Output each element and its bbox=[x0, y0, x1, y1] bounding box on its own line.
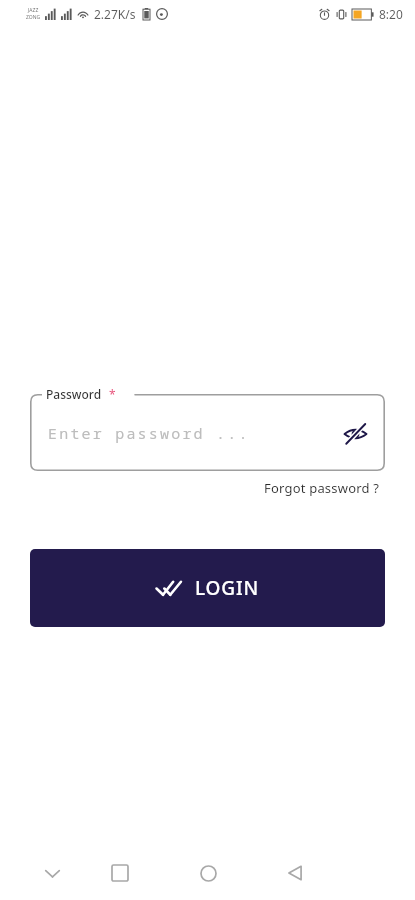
staticText: Forgot password ? bbox=[264, 479, 380, 497]
staticText: LOGIN bbox=[195, 575, 259, 601]
button[interactable]: Show password bbox=[333, 411, 377, 455]
button[interactable]: Forgot password ? bbox=[256, 476, 388, 500]
button[interactable]: Recent apps bbox=[98, 851, 142, 895]
staticText: 2.27K/s bbox=[94, 6, 136, 22]
button[interactable]: Hide keyboard bbox=[30, 851, 74, 895]
staticText: * bbox=[109, 386, 116, 402]
button[interactable]: LOGIN bbox=[30, 549, 385, 627]
button[interactable]: Home bbox=[186, 851, 230, 895]
staticText: JAZZ bbox=[28, 7, 39, 14]
button[interactable]: Enter password ... bbox=[30, 394, 385, 471]
staticText: Enter password ... bbox=[48, 423, 250, 443]
staticText: 8:20 bbox=[379, 6, 403, 22]
staticText: Password bbox=[46, 386, 102, 402]
staticText: ZONG bbox=[26, 14, 41, 21]
button[interactable]: Back bbox=[273, 851, 317, 895]
